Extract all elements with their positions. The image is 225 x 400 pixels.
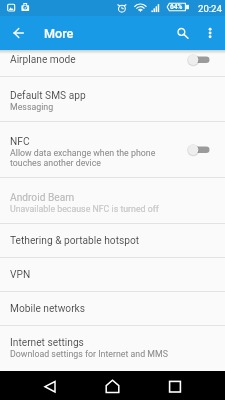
staticText: NFC (10, 136, 30, 148)
staticText: Airplane mode (10, 54, 76, 66)
button[interactable]: Android Beam (0, 178, 225, 223)
staticText: Internet settings (10, 337, 84, 349)
button[interactable]: Search (170, 19, 198, 47)
button[interactable]: More options (197, 19, 225, 47)
button[interactable]: Internet settings (0, 326, 225, 364)
button[interactable]: VPN (0, 258, 225, 291)
staticText: Mobile networks (10, 303, 86, 315)
staticText: Allow data exchange when the phone (10, 148, 156, 158)
staticText: VPN (10, 269, 31, 281)
staticText: Download settings for Internet and MMS (10, 349, 168, 359)
button[interactable]: NFC (0, 122, 225, 177)
button[interactable]: Mobile networks (0, 292, 225, 325)
button[interactable]: Recent apps (153, 371, 197, 400)
staticText: Unavailable because NFC is turned off (10, 204, 159, 214)
staticText: Messaging (10, 102, 54, 112)
staticText: 20:24 (198, 3, 222, 14)
button[interactable]: Default SMS app (0, 77, 225, 121)
button[interactable]: Back (28, 371, 72, 400)
staticText: Default SMS app (10, 90, 86, 102)
button[interactable]: Navigate up (5, 19, 33, 47)
button[interactable]: Airplane mode (0, 50, 225, 76)
staticText: More (44, 26, 74, 41)
button[interactable]: Home (90, 371, 135, 400)
button[interactable]: Tethering & portable hotspot (0, 224, 225, 257)
staticText: 64% (170, 3, 183, 11)
staticText: touches another device (10, 158, 101, 168)
staticText: Tethering & portable hotspot (10, 235, 140, 247)
staticText: Android Beam (10, 192, 75, 204)
